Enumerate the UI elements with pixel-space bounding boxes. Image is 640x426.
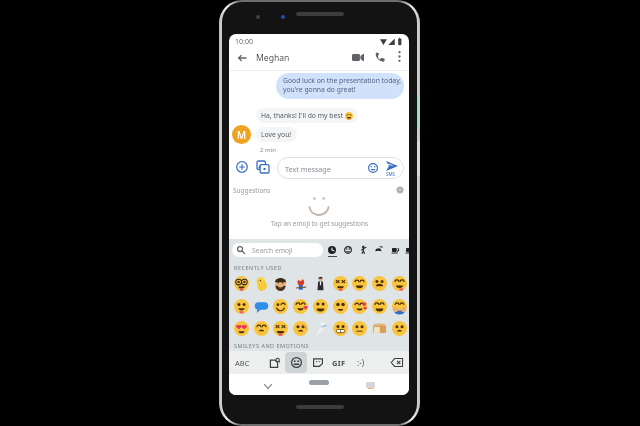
button[interactable]: Emoji	[391, 298, 407, 314]
button[interactable]: Backspace	[388, 354, 406, 371]
button[interactable]: Emoji	[351, 320, 367, 336]
button[interactable]: ABC	[229, 354, 255, 371]
button[interactable]: Suggestion settings	[394, 184, 406, 196]
staticText: GIF	[332, 358, 346, 368]
button[interactable]: Emoji	[272, 320, 288, 336]
button[interactable]: Emoji category 1	[324, 242, 340, 258]
button[interactable]: Emoji	[391, 275, 407, 291]
button[interactable]: Back	[260, 378, 276, 394]
button[interactable]: Emoji	[312, 298, 328, 314]
button[interactable]: Search emoji	[232, 243, 323, 257]
staticText: SMS	[386, 171, 396, 177]
staticText: 10:00	[235, 37, 253, 47]
button[interactable]: Emoji	[371, 320, 387, 336]
button[interactable]: Emoji category 4	[371, 242, 387, 258]
staticText: M	[237, 128, 247, 142]
staticText: Text message	[285, 164, 331, 174]
button[interactable]: Emoji	[292, 298, 308, 314]
button[interactable]: Emoji	[371, 275, 387, 291]
button[interactable]: Emoji	[253, 275, 269, 291]
button[interactable]: Add attachment	[233, 158, 251, 176]
button[interactable]: Video call	[349, 48, 367, 66]
button[interactable]: Back	[233, 49, 250, 66]
button[interactable]: Text message	[277, 157, 404, 179]
button[interactable]: Emoji	[371, 298, 387, 314]
button[interactable]: Emoji	[391, 320, 407, 336]
staticText: Search emoji	[252, 246, 293, 255]
button[interactable]: :-)	[352, 354, 370, 371]
button[interactable]: Emoji category 6	[401, 242, 409, 258]
button[interactable]: Take photo	[254, 158, 272, 176]
button[interactable]: Emoji	[233, 275, 249, 291]
button[interactable]: Emoji	[332, 320, 348, 336]
button[interactable]: Emoji	[272, 298, 288, 314]
staticText: :-)	[357, 357, 365, 368]
button[interactable]: Emoji	[351, 275, 367, 291]
staticText: Ha, thanks! I'll do my best	[261, 111, 345, 120]
staticText: RECENTLY USED	[234, 264, 283, 271]
button[interactable]: GIF	[328, 354, 350, 371]
staticText: Good luck on the presentation today, you…	[283, 76, 402, 94]
button[interactable]: Emoji	[233, 298, 249, 314]
button[interactable]: Emoji category 3	[356, 242, 372, 258]
button[interactable]: Emoji	[292, 320, 308, 336]
staticText: Meghan	[256, 52, 290, 64]
button[interactable]: Emoji	[272, 275, 288, 291]
button[interactable]: Switch keyboard	[363, 378, 377, 392]
staticText: SMILEYS AND EMOTIONS	[234, 342, 310, 349]
button[interactable]: More options	[391, 48, 407, 64]
button[interactable]: Emoji	[292, 275, 308, 291]
button[interactable]: Emoji keyboard	[285, 352, 307, 373]
button[interactable]: Home	[309, 380, 329, 385]
staticText: 2 min	[260, 146, 276, 154]
button[interactable]: Stickers	[309, 354, 327, 371]
staticText: Love you!	[261, 130, 292, 139]
button[interactable]: Emoji	[332, 275, 348, 291]
button[interactable]: Emoji	[332, 298, 348, 314]
button[interactable]: Call	[371, 48, 389, 66]
button[interactable]: Emoji category 2	[340, 242, 356, 258]
button[interactable]: Emoji	[253, 298, 269, 314]
button[interactable]: Emoji category 5	[387, 242, 403, 258]
staticText: Suggestions	[233, 186, 271, 195]
button[interactable]: Emoji	[233, 320, 249, 336]
button[interactable]: Search	[266, 354, 284, 371]
button[interactable]: Emoji	[312, 320, 328, 336]
button[interactable]: Love you!	[256, 127, 297, 142]
button[interactable]: Insert emoji	[367, 162, 379, 174]
staticText: ABC	[235, 358, 250, 368]
button[interactable]: Emoji	[253, 320, 269, 336]
button[interactable]: Ha, thanks! I'll do my best	[256, 108, 358, 123]
button[interactable]: Emoji	[351, 298, 367, 314]
button[interactable]: Emoji	[312, 275, 328, 291]
button[interactable]: Good luck on the presentation today, you…	[276, 73, 404, 99]
button[interactable]: Send SMS	[384, 159, 400, 177]
staticText: Tap an emoji to get suggestions	[271, 219, 369, 228]
